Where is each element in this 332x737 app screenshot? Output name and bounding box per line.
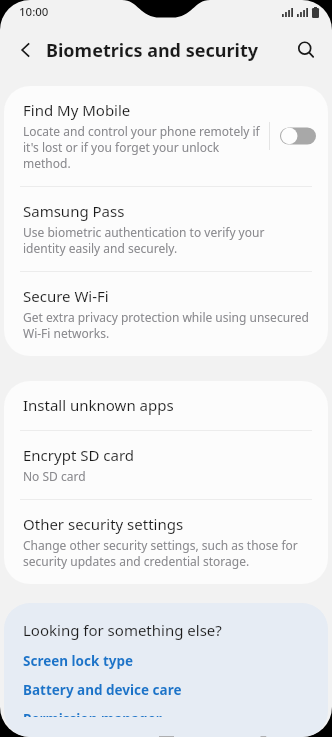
button[interactable]: Find My Mobile	[4, 86, 328, 186]
button[interactable]: Permission manager	[23, 710, 162, 717]
button[interactable]: Search	[288, 32, 324, 68]
staticText: Get extra privacy protection while using…	[23, 309, 309, 341]
staticText: Other security settings	[23, 514, 184, 534]
button[interactable]: Install unknown apps	[4, 381, 328, 430]
button[interactable]: Secure Wi-Fi	[4, 272, 328, 356]
staticText: Secure Wi-Fi	[23, 286, 109, 306]
staticText: Find My Mobile	[23, 100, 131, 120]
staticText: Use biometric authentication to verify y…	[23, 224, 309, 256]
staticText: Install unknown apps	[23, 395, 174, 415]
button[interactable]: Samsung Pass	[4, 187, 328, 271]
button[interactable]: Battery and device care	[23, 681, 182, 699]
button[interactable]: Find My Mobile toggle	[280, 125, 316, 147]
staticText: Biometrics and security	[46, 38, 258, 63]
button[interactable]: Back	[8, 32, 44, 68]
staticText: Samsung Pass	[23, 201, 125, 221]
staticText: Encrypt SD card	[23, 445, 135, 465]
staticText: Screen lock type	[23, 652, 134, 670]
staticText: Permission manager	[23, 710, 162, 717]
button[interactable]: Screen lock type	[23, 652, 134, 670]
staticText: 10:00	[19, 4, 49, 20]
staticText: Locate and control your phone remotely i…	[23, 123, 261, 171]
staticText: No SD card	[23, 468, 86, 484]
button[interactable]: Other security settings	[4, 500, 328, 584]
staticText: Battery and device care	[23, 681, 182, 699]
staticText: Change other security settings, such as …	[23, 537, 309, 569]
staticText: Looking for something else?	[23, 620, 222, 640]
button[interactable]: Encrypt SD card	[4, 431, 328, 499]
